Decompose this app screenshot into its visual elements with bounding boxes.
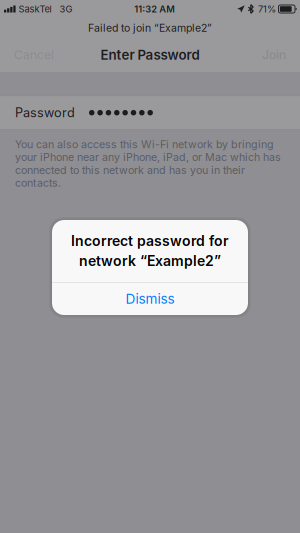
staticText: network “Example2” bbox=[79, 252, 221, 269]
staticText: Incorrect password for bbox=[71, 233, 229, 249]
staticText: 71% bbox=[258, 3, 276, 15]
staticText: You can also access this Wi-Fi network b… bbox=[15, 138, 281, 189]
staticText: Failed to join “Example2” bbox=[88, 22, 212, 34]
button[interactable]: Dismiss bbox=[52, 283, 248, 315]
staticText: Join bbox=[262, 48, 286, 62]
staticText: 3G bbox=[60, 3, 73, 15]
staticText: Enter Password bbox=[100, 47, 199, 63]
staticText: 11:32 AM bbox=[134, 3, 175, 15]
staticText: SaskTel bbox=[19, 3, 52, 15]
staticText: Cancel bbox=[14, 48, 54, 62]
staticText: Dismiss bbox=[125, 291, 174, 307]
staticText: Password bbox=[15, 105, 75, 120]
